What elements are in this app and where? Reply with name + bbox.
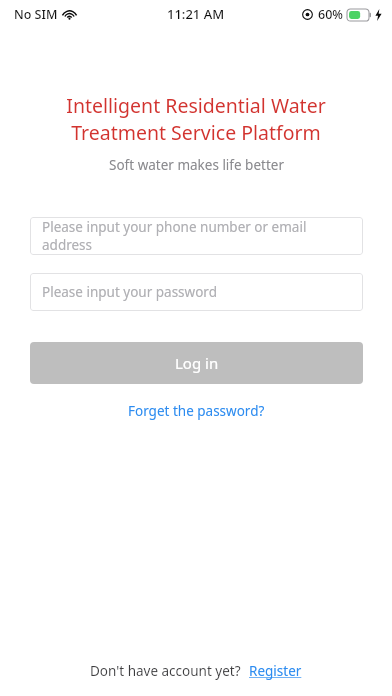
staticText: Please input your password [42, 283, 217, 301]
staticText: 11:21 AM [167, 5, 225, 23]
staticText: Intelligent Residential Water Treatment … [31, 92, 361, 146]
staticText: Don't have account yet? [90, 662, 241, 680]
staticText: 60% [318, 6, 343, 23]
button[interactable]: Register [249, 662, 302, 680]
staticText: Please input your phone number or email … [42, 218, 351, 254]
staticText: Soft water makes life better [109, 156, 284, 174]
button[interactable]: Log in [30, 342, 363, 384]
staticText: No SIM [14, 6, 58, 23]
button[interactable]: Please input your password [30, 273, 363, 311]
staticText: Forget the password? [128, 402, 265, 420]
button[interactable]: Please input your phone number or email … [30, 217, 363, 255]
button[interactable]: Forget the password? [120, 398, 273, 424]
staticText: Register [249, 662, 302, 680]
staticText: Log in [175, 353, 219, 373]
